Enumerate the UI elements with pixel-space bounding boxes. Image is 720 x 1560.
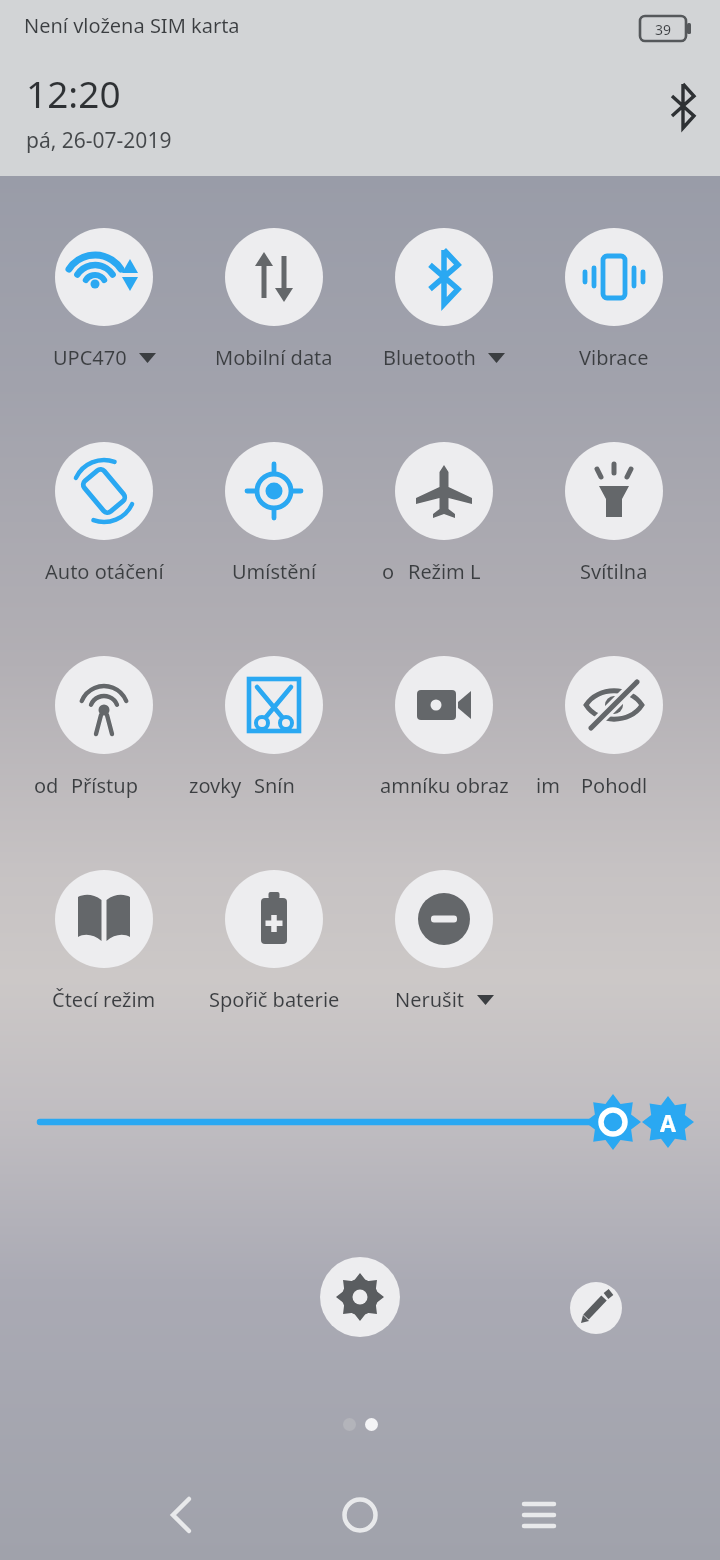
button[interactable]: Brightness bbox=[0, 1076, 720, 1168]
button[interactable]: Mobilní data bbox=[189, 228, 359, 400]
staticText: Auto otáčení bbox=[45, 558, 164, 585]
staticText: Spořič baterie bbox=[209, 986, 340, 1013]
button[interactable]: Back bbox=[146, 1480, 216, 1550]
staticText: Vibrace bbox=[579, 344, 649, 371]
button[interactable]: Settings bbox=[320, 1257, 400, 1337]
staticText: 39 bbox=[655, 20, 672, 39]
button[interactable]: Home bbox=[325, 1480, 395, 1550]
button[interactable]: Svítilna bbox=[529, 442, 699, 614]
staticText: Svítilna bbox=[580, 558, 648, 585]
staticText: Nerušit bbox=[395, 986, 465, 1013]
staticText: Snín bbox=[254, 772, 295, 799]
staticText: UPC470 bbox=[53, 344, 127, 371]
staticText: Není vložena SIM karta bbox=[24, 12, 240, 39]
staticText: Přístup bbox=[71, 772, 138, 799]
button[interactable]: Edit tiles bbox=[570, 1282, 622, 1334]
button[interactable]: Nerušit bbox=[359, 870, 529, 1042]
staticText: pá, 26-07-2019 bbox=[26, 126, 172, 155]
button[interactable]: Pohodl bbox=[529, 656, 699, 828]
button[interactable]: Bluetooth bbox=[665, 88, 701, 124]
button[interactable]: Vibrace bbox=[529, 228, 699, 400]
button[interactable]: UPC470 bbox=[19, 228, 189, 400]
staticText: 12:20 bbox=[26, 68, 121, 118]
staticText: im bbox=[536, 772, 560, 799]
button[interactable]: Bluetooth bbox=[359, 228, 529, 400]
button[interactable]: Čtecí režim bbox=[19, 870, 189, 1042]
button[interactable]: Přístup bbox=[19, 656, 189, 828]
staticText: Mobilní data bbox=[215, 344, 333, 371]
staticText: zovky bbox=[189, 772, 242, 799]
staticText: o bbox=[382, 558, 395, 585]
staticText: Režim L bbox=[408, 558, 481, 585]
staticText: Bluetooth bbox=[383, 344, 476, 371]
button[interactable]: Režim L bbox=[359, 442, 529, 614]
button[interactable]: Recent apps bbox=[504, 1480, 574, 1550]
staticText: od bbox=[34, 772, 59, 799]
staticText: A bbox=[656, 1107, 680, 1138]
button[interactable]: Spořič baterie bbox=[189, 870, 359, 1042]
staticText: amníku obraz bbox=[380, 772, 509, 799]
button[interactable]: Auto otáčení bbox=[19, 442, 189, 614]
button[interactable]: Snín bbox=[189, 656, 359, 828]
staticText: Čtecí režim bbox=[52, 986, 156, 1013]
button[interactable]: amníku obraz bbox=[359, 656, 529, 828]
staticText: Pohodl bbox=[581, 772, 648, 799]
button[interactable]: Umístění bbox=[189, 442, 359, 614]
staticText: Umístění bbox=[232, 558, 317, 585]
